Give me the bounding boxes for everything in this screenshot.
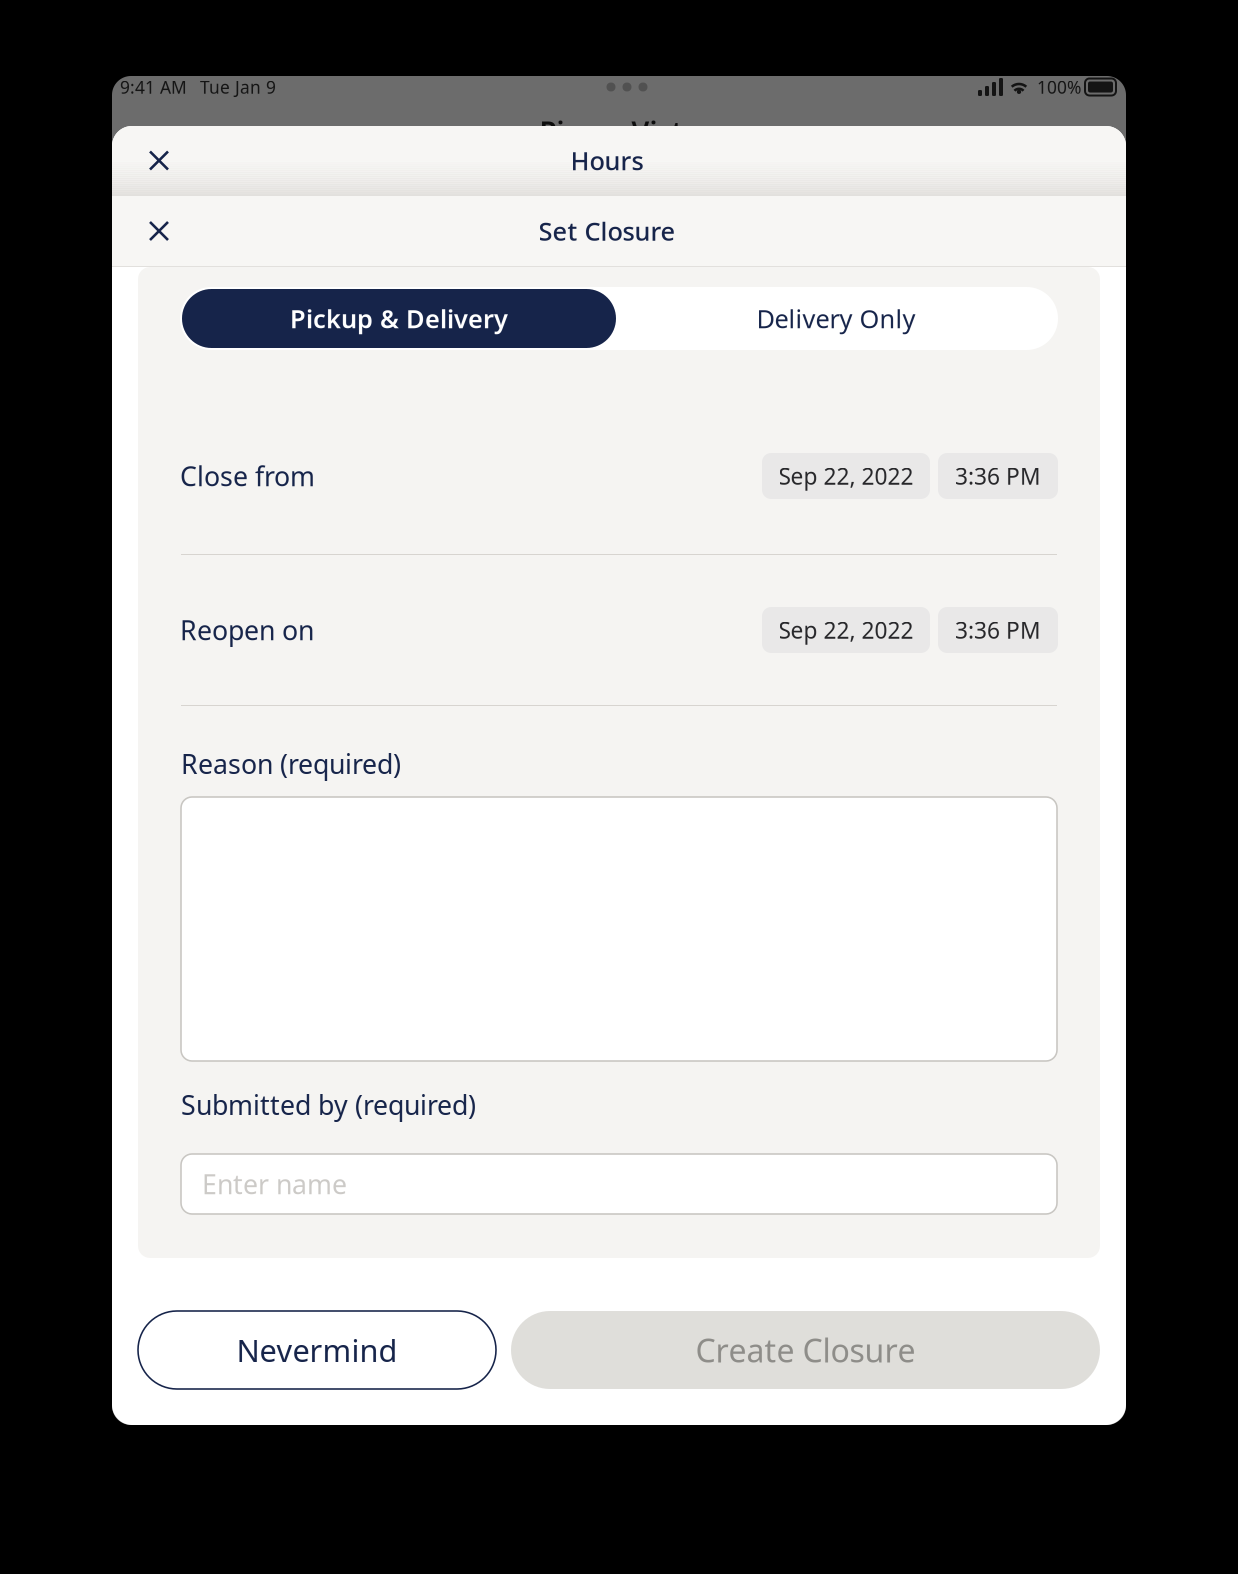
staticText: Delivery Only: [756, 302, 915, 335]
button[interactable]: Close: [128, 126, 190, 195]
staticText: 9:41 AM: [120, 75, 187, 98]
staticText: 100%: [1037, 75, 1081, 98]
staticText: Nevermind: [236, 1330, 397, 1370]
staticText: Create Closure: [695, 1329, 915, 1371]
button[interactable]: Sep 22, 2022: [762, 607, 930, 653]
button[interactable]: Close: [128, 196, 190, 266]
button[interactable]: Sep 22, 2022: [762, 453, 930, 499]
staticText: 3:36 PM: [955, 461, 1041, 491]
staticText: Set Closure: [538, 214, 675, 248]
staticText: Reopen on: [180, 612, 314, 648]
button[interactable]: Create Closure: [511, 1311, 1100, 1389]
staticText: Piazza Vista: [539, 113, 698, 150]
staticText: Enter name: [202, 1166, 347, 1202]
button[interactable]: Nevermind: [138, 1311, 496, 1389]
staticText: Close from: [180, 458, 315, 494]
staticText: Submitted by (required): [181, 1087, 476, 1122]
button[interactable]: 3:36 PM: [938, 607, 1058, 653]
staticText: 3:36 PM: [955, 615, 1041, 645]
staticText: Hours: [570, 144, 643, 177]
staticText: Sep 22, 2022: [778, 461, 913, 491]
staticText: Reason (required): [181, 746, 401, 781]
button[interactable]: Delivery Only: [616, 289, 1056, 348]
staticText: Tue Jan 9: [200, 75, 276, 98]
staticText: Sep 22, 2022: [778, 615, 913, 645]
button[interactable]: Pickup & Delivery: [182, 289, 616, 348]
staticText: Pickup & Delivery: [290, 302, 508, 335]
button[interactable]: 3:36 PM: [938, 453, 1058, 499]
